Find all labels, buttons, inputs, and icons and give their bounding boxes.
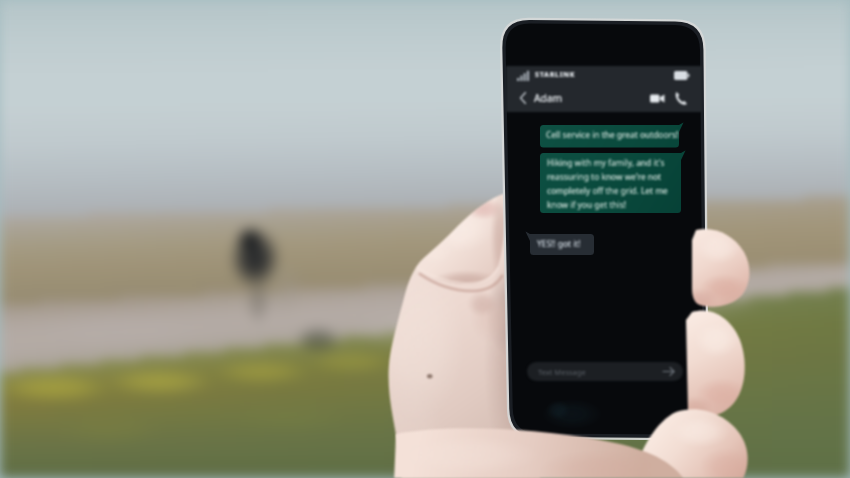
- staticText: Text Message: [538, 367, 586, 377]
- button[interactable]: Back: [514, 88, 534, 108]
- button[interactable]: Hiking with my family, and it's reassuri…: [547, 157, 675, 210]
- button[interactable]: Text Message: [527, 362, 683, 381]
- button[interactable]: Adam: [534, 91, 563, 105]
- staticText: STARLINK: [535, 70, 576, 80]
- button[interactable]: Video call: [650, 91, 666, 107]
- button[interactable]: YES!! got it!: [537, 238, 581, 249]
- staticText: Hiking with my family, and it's reassuri…: [547, 157, 675, 210]
- staticText: YES!! got it!: [537, 238, 581, 249]
- button[interactable]: Cell service in the great outdoors!: [546, 129, 679, 140]
- staticText: Adam: [534, 91, 563, 105]
- button[interactable]: Call: [674, 90, 690, 106]
- staticText: Cell service in the great outdoors!: [546, 129, 679, 140]
